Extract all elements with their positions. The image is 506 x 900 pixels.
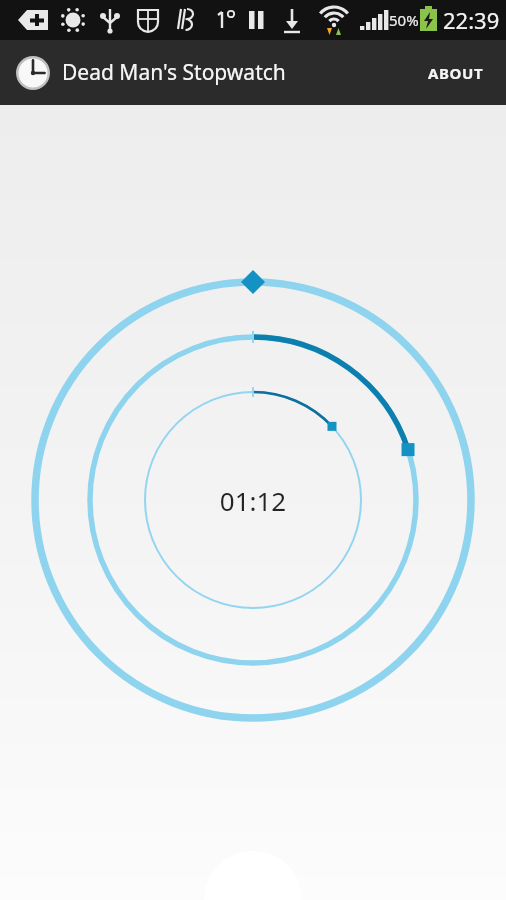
staticText: Dead Man's Stopwatch <box>62 58 420 87</box>
button[interactable]: ABOUT <box>420 53 492 93</box>
button[interactable]: 01:12 <box>208 483 298 518</box>
staticText: ABOUT <box>428 63 484 83</box>
staticText: 22:39 <box>443 5 500 35</box>
staticText: 50% <box>389 10 419 30</box>
